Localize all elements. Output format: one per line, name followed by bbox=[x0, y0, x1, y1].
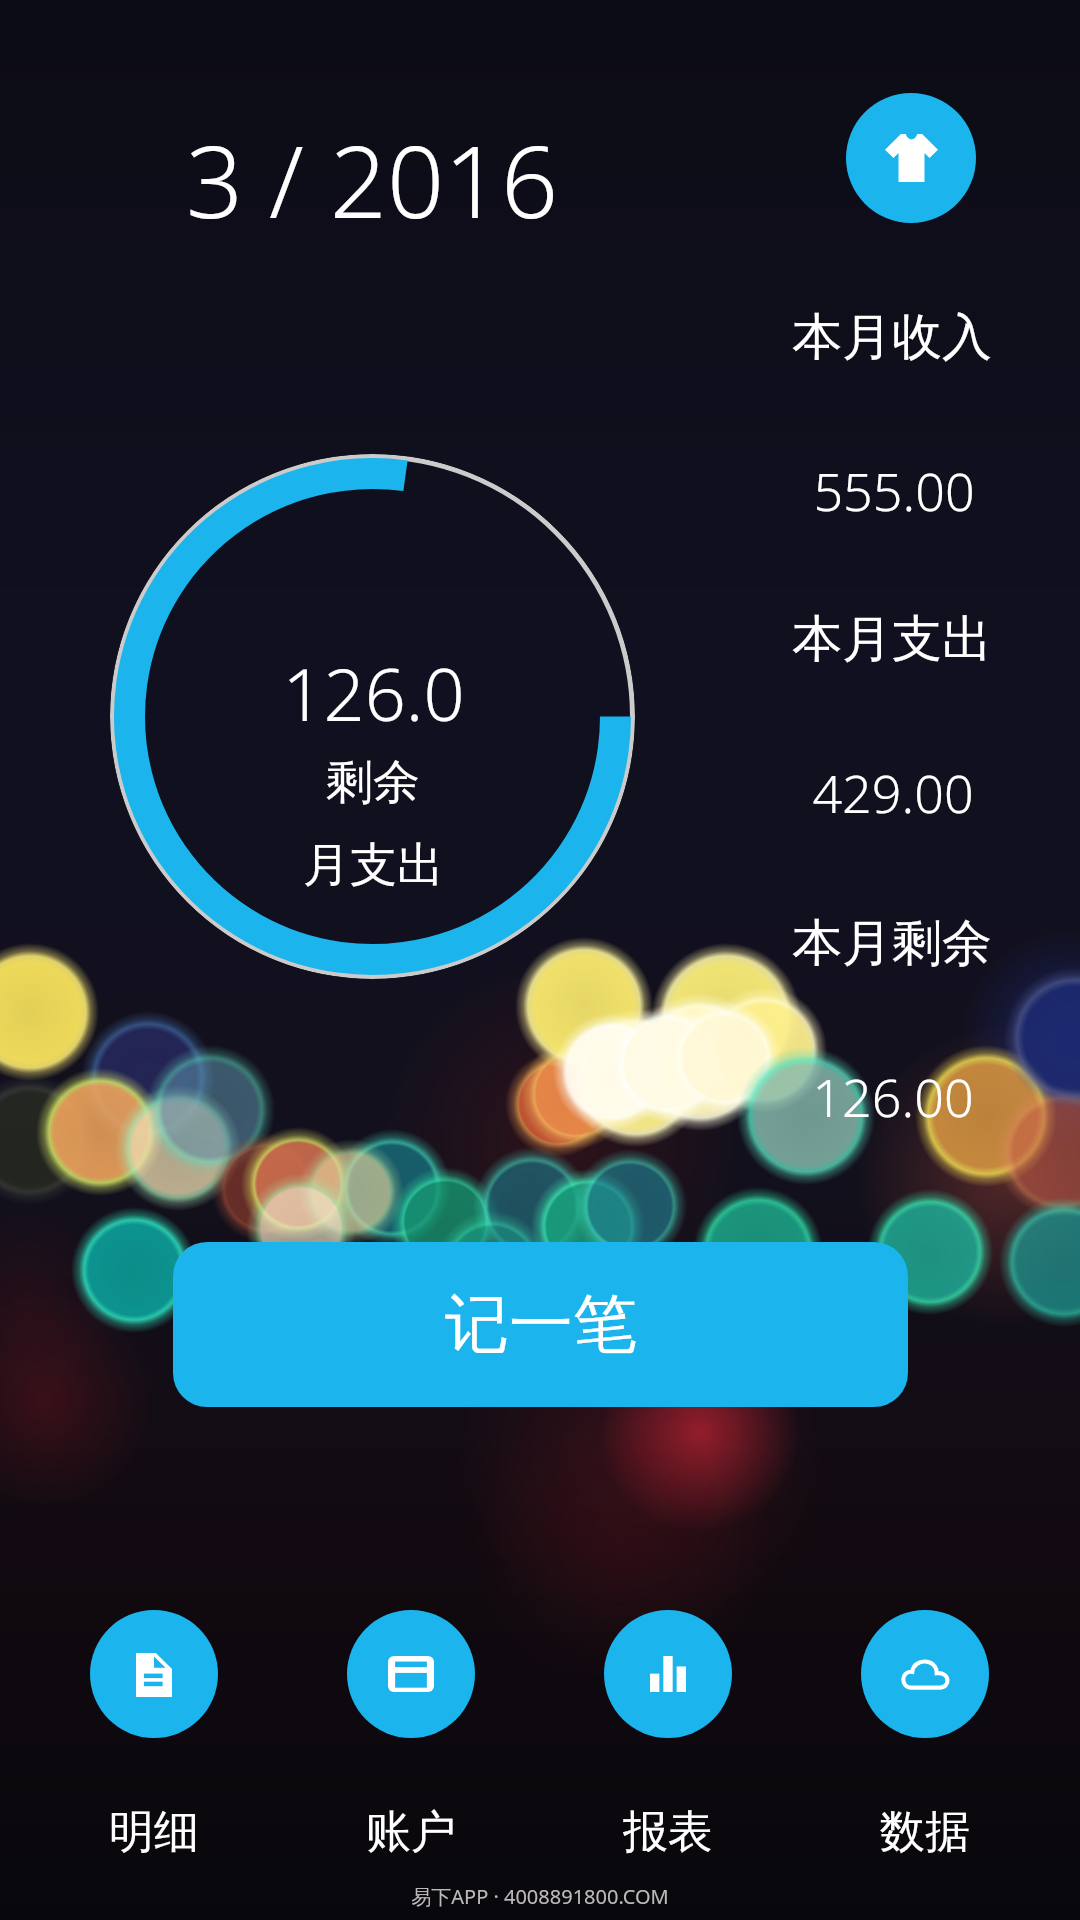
staticText: 月支出 bbox=[303, 836, 444, 895]
staticText: 本月剩余 bbox=[792, 912, 992, 975]
staticText: 剩余 bbox=[326, 753, 420, 812]
staticText: 数据 bbox=[880, 1804, 970, 1861]
staticText: 126.00 bbox=[812, 1061, 974, 1132]
staticText: 本月支出 bbox=[792, 608, 992, 671]
staticText: 3 / 2016 bbox=[186, 111, 559, 247]
staticText: 本月收入 bbox=[792, 306, 992, 369]
button[interactable]: 3 / 2016 bbox=[167, 104, 577, 254]
staticText: 126.0 bbox=[282, 644, 465, 742]
staticText: 记一笔 bbox=[445, 1284, 637, 1365]
button[interactable]: Accounts bbox=[321, 1610, 501, 1900]
button[interactable]: 记一笔 bbox=[173, 1242, 908, 1407]
button[interactable]: Category bbox=[846, 93, 976, 223]
button[interactable]: Details bbox=[64, 1610, 244, 1900]
staticText: 报表 bbox=[623, 1804, 713, 1861]
button[interactable]: Monthly budget chart bbox=[110, 454, 635, 979]
staticText: 429.00 bbox=[812, 757, 974, 828]
button[interactable]: Data bbox=[835, 1610, 1015, 1900]
button[interactable]: Reports bbox=[578, 1610, 758, 1900]
staticText: 账户 bbox=[366, 1804, 456, 1861]
staticText: 易下APP · 4008891800.COM bbox=[411, 1883, 669, 1910]
staticText: 555.00 bbox=[813, 455, 975, 526]
staticText: 明细 bbox=[109, 1804, 199, 1861]
